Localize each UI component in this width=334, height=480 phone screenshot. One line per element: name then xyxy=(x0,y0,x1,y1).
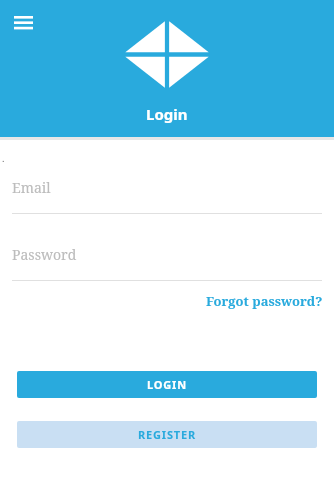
button[interactable]: REGISTER xyxy=(17,421,317,448)
staticText: REGISTER xyxy=(138,427,196,442)
button[interactable]: LOGIN xyxy=(17,371,317,398)
button[interactable]: Forgot password? xyxy=(206,288,323,314)
staticText: . xyxy=(2,152,5,164)
staticText: Password xyxy=(12,245,77,264)
staticText: Login xyxy=(146,104,188,124)
staticText: LOGIN xyxy=(147,377,187,392)
button[interactable]: Open navigation menu xyxy=(8,8,38,38)
staticText: Email xyxy=(12,178,51,197)
button[interactable]: Password xyxy=(0,245,334,281)
button[interactable]: Email xyxy=(0,178,334,214)
